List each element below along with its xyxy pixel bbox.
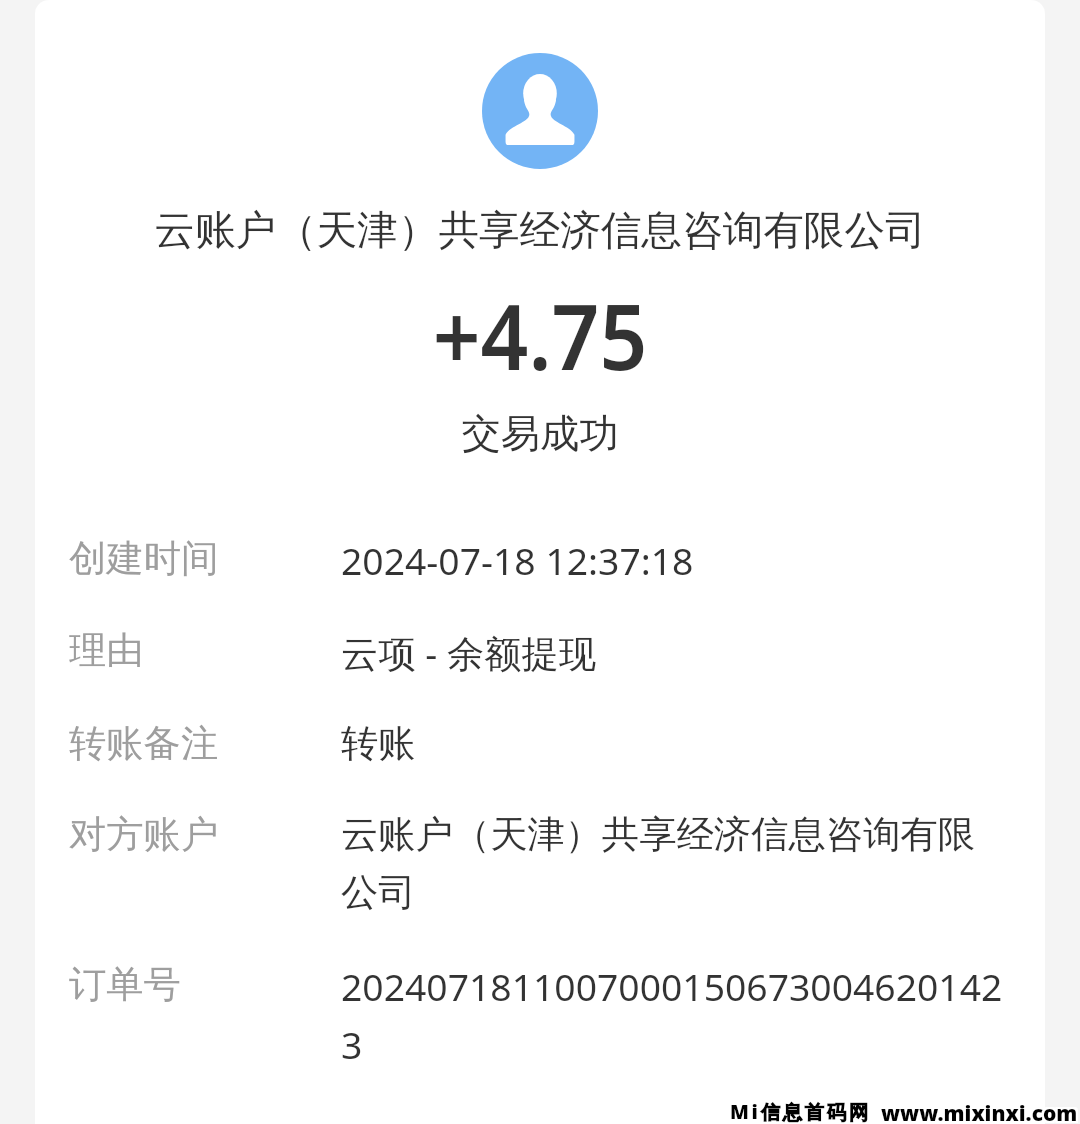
staticText: www.mixinxi.com: [883, 1097, 1080, 1124]
button[interactable]: 创建时间: [69, 535, 1010, 586]
staticText: 转账备注: [69, 720, 341, 767]
staticText: Mi信息首码网: [732, 1100, 873, 1124]
button[interactable]: 理由: [69, 627, 1010, 678]
staticText: 创建时间: [69, 535, 341, 582]
staticText: 2024-07-18 12:37:18: [341, 535, 694, 586]
staticText: +4.75: [70, 274, 1010, 397]
staticText: 云项 - 余额提现: [341, 627, 597, 678]
staticText: 理由: [69, 627, 341, 674]
staticText: 交易成功: [35, 409, 1045, 459]
staticText: Mi信息首码网: [728, 1100, 869, 1124]
staticText: 云账户（天津）共享经济信息咨询有限公司: [341, 811, 1010, 916]
staticText: 云账户（天津）共享经济信息咨询有限公司: [35, 205, 1045, 256]
button[interactable]: 转账备注: [69, 720, 1010, 767]
staticText: www.mixinxi.com: [879, 1099, 1076, 1124]
button[interactable]: 对方账户: [69, 811, 1010, 916]
staticText: Mi信息首码网: [730, 1098, 871, 1124]
staticText: www.mixinxi.com: [881, 1099, 1078, 1124]
staticText: Mi信息首码网: [732, 1098, 873, 1124]
staticText: 对方账户: [69, 811, 341, 858]
staticText: 转账: [341, 720, 416, 767]
staticText: Mi信息首码网: [730, 1100, 871, 1124]
staticText: www.mixinxi.com: [879, 1101, 1076, 1124]
staticText: www.mixinxi.com: [883, 1101, 1080, 1124]
staticText: Mi信息首码网: [732, 1096, 873, 1123]
staticText: Mi信息首码网: [730, 1098, 871, 1124]
staticText: 20240718110070001506730046201423: [341, 961, 1010, 1069]
button[interactable]: 订单号: [69, 961, 1010, 1069]
staticText: 订单号: [69, 961, 341, 1008]
other: Avatar: [482, 53, 598, 169]
staticText: Mi信息首码网: [730, 1096, 871, 1123]
staticText: www.mixinxi.com: [881, 1099, 1078, 1124]
staticText: Mi信息首码网: [728, 1096, 869, 1123]
staticText: www.mixinxi.com: [879, 1097, 1076, 1124]
staticText: www.mixinxi.com: [881, 1101, 1078, 1124]
staticText: Mi信息首码网: [728, 1098, 869, 1124]
staticText: www.mixinxi.com: [881, 1097, 1078, 1124]
staticText: www.mixinxi.com: [883, 1099, 1080, 1124]
